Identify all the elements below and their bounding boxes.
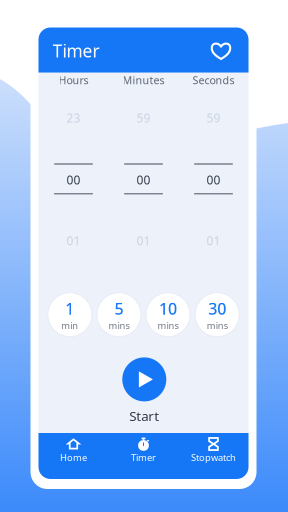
staticText: min [61, 319, 78, 331]
staticText: Hours [58, 73, 88, 87]
staticText: mins [158, 319, 179, 331]
staticText: 23 [66, 110, 80, 126]
staticText: 1 [65, 298, 74, 319]
staticText: 10 [159, 298, 177, 319]
staticText: mins [207, 319, 228, 331]
staticText: Seconds [192, 73, 234, 87]
button[interactable]: 30 [195, 293, 239, 337]
staticText: 00 [206, 172, 220, 188]
staticText: 00 [136, 172, 150, 188]
staticText: 01 [136, 233, 150, 248]
button[interactable]: Start [38, 357, 248, 429]
button[interactable]: Home [38, 433, 108, 479]
staticText: 59 [136, 110, 150, 126]
button[interactable]: Favourite [206, 36, 236, 66]
staticText: Stopwatch [191, 451, 236, 464]
staticText: 00 [66, 172, 80, 188]
button[interactable]: 1 [48, 293, 92, 337]
button[interactable]: Stopwatch [178, 433, 248, 479]
staticText: 5 [114, 298, 123, 319]
staticText: 30 [208, 298, 226, 319]
button[interactable]: 10 [146, 293, 190, 337]
button[interactable]: Timer [108, 433, 178, 479]
staticText: 01 [66, 233, 80, 248]
staticText: 59 [206, 110, 220, 126]
button[interactable]: 5 [97, 293, 141, 337]
staticText: Timer [131, 451, 156, 464]
staticText: Minutes [122, 73, 164, 87]
staticText: Timer [52, 39, 99, 62]
staticText: Start [129, 407, 159, 425]
staticText: 01 [206, 233, 220, 248]
staticText: mins [108, 319, 129, 331]
staticText: Home [60, 451, 87, 464]
